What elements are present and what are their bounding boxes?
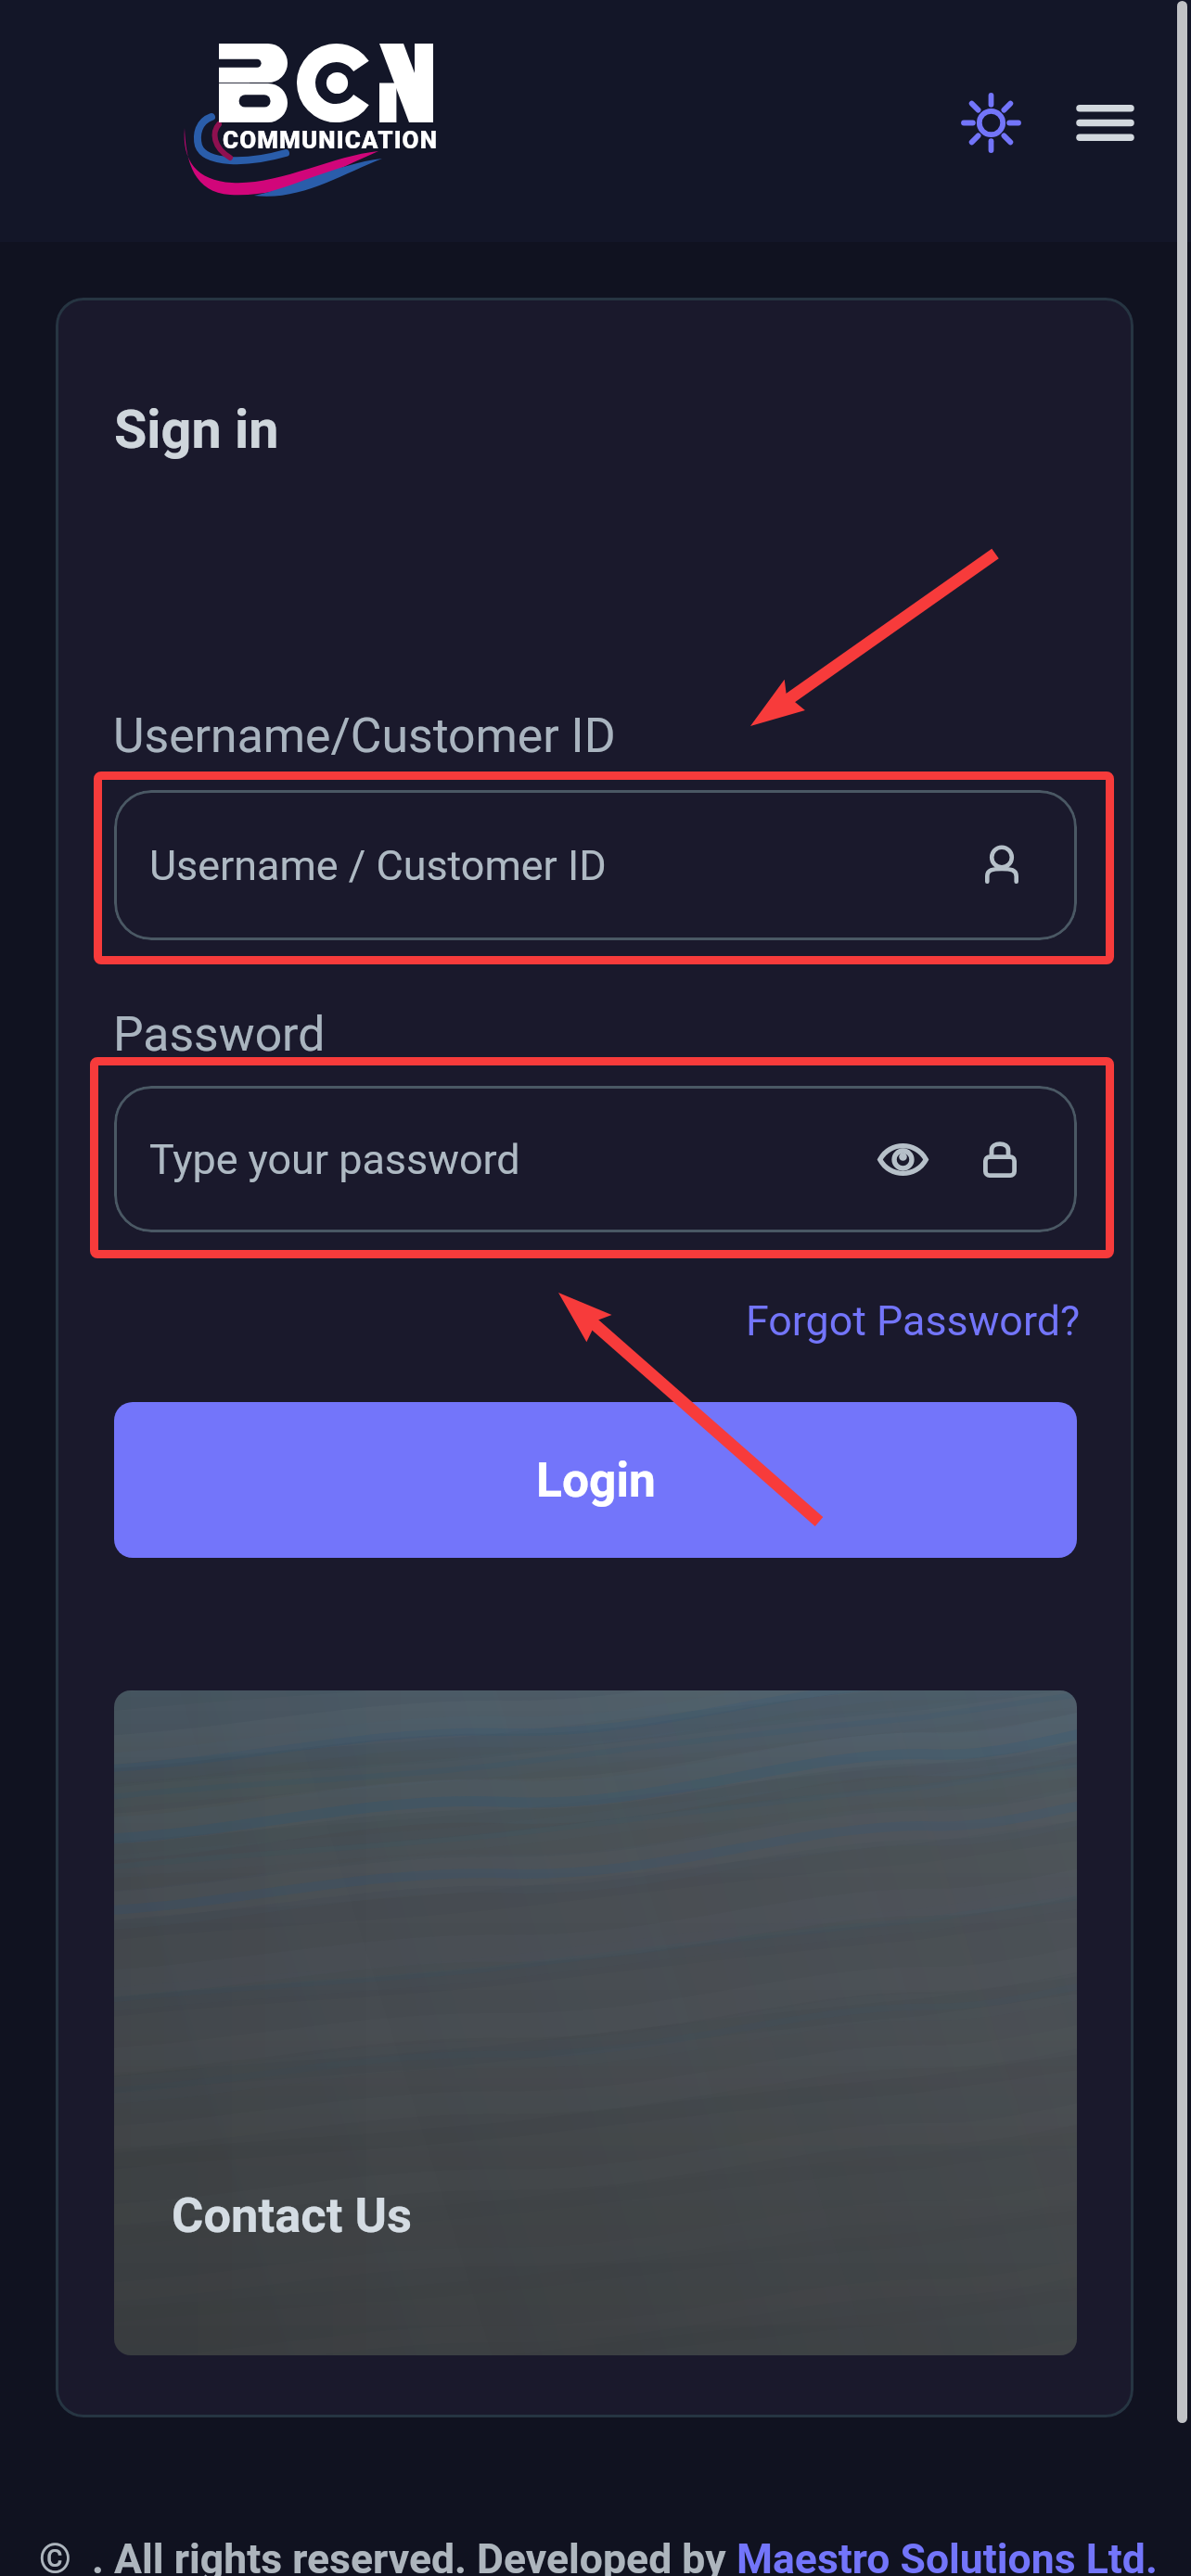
button[interactable]: Login	[114, 1402, 1077, 1558]
staticText: Username/Customer ID	[113, 708, 616, 764]
button[interactable]: Type your password	[114, 1086, 1077, 1232]
staticText: Password	[113, 1006, 326, 1063]
button[interactable]: Toggle light mode	[952, 83, 1030, 161]
staticText: Login	[536, 1452, 656, 1508]
staticText: Contact Us	[172, 2187, 413, 2244]
button[interactable]: Show password	[865, 1122, 940, 1196]
staticText: Forgot Password?	[746, 1296, 1081, 1345]
staticText: Type your password	[149, 1135, 520, 1184]
staticText: © . All rights reserved. Developed by	[39, 2535, 736, 2576]
button[interactable]: Open menu	[1066, 83, 1144, 161]
button[interactable]: Contact Us	[114, 1690, 1077, 2355]
button[interactable]: Maestro Solutions Ltd.	[736, 2535, 1158, 2576]
button[interactable]: Forgot Password?	[733, 1283, 1094, 1358]
staticText: Sign in	[114, 399, 279, 461]
staticText: Username / Customer ID	[149, 841, 607, 890]
staticText: COMMUNICATION	[223, 126, 438, 154]
button[interactable]: Username / Customer ID	[114, 790, 1077, 940]
